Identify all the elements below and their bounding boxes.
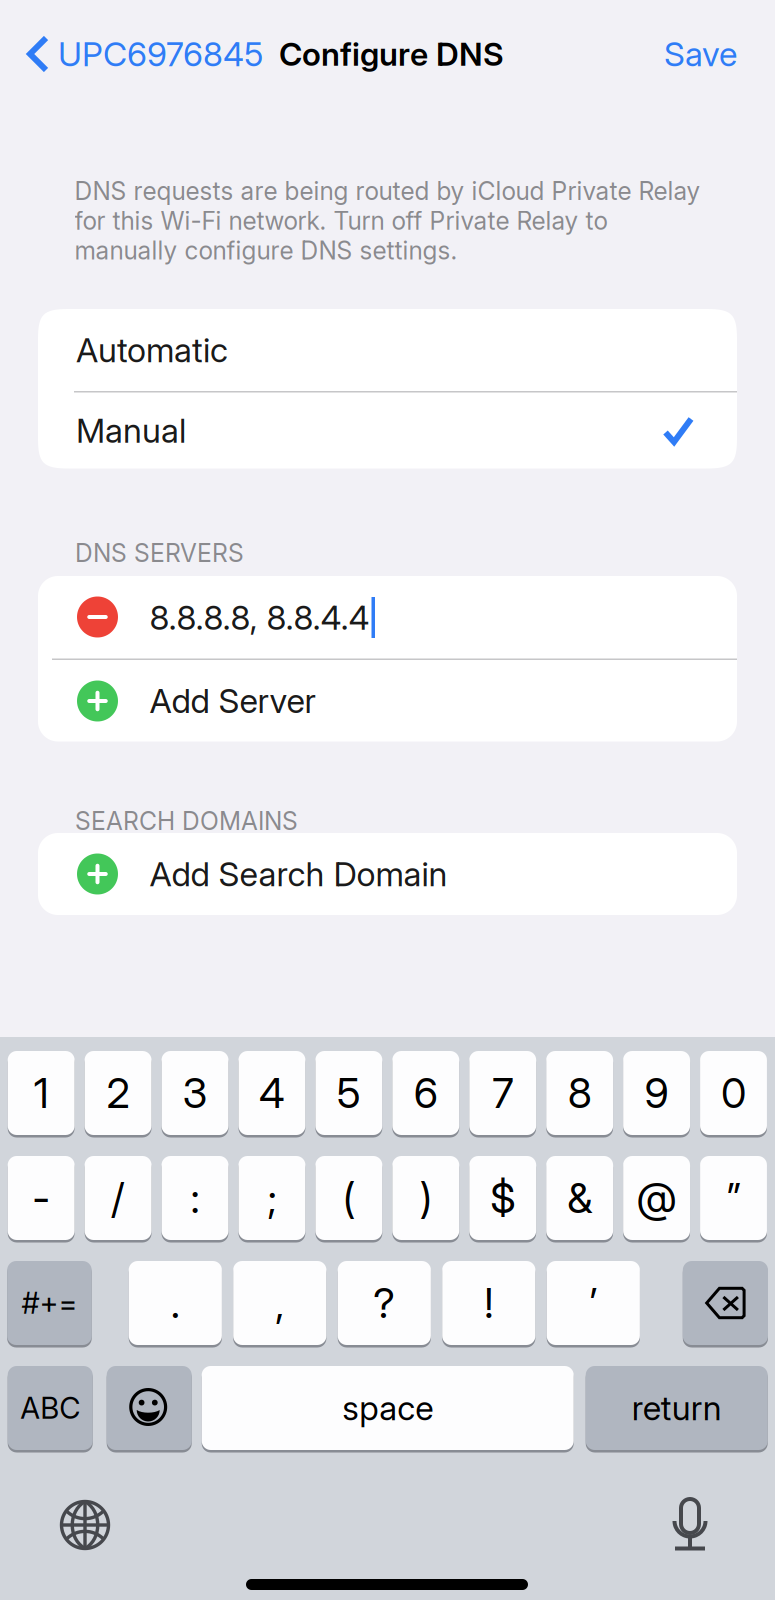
button[interactable]: ABC [8,1366,93,1453]
staticText: & [567,1173,592,1223]
staticText: ) [420,1173,432,1223]
button[interactable]: $ [469,1156,536,1243]
staticText: 3 [182,1068,207,1118]
button[interactable]: @ [623,1156,690,1243]
button[interactable]: Add Server [38,660,737,741]
button[interactable]: UPC6976845 [0,0,263,108]
button[interactable]: 5 [315,1051,382,1138]
button[interactable]: Manual [38,392,737,468]
button[interactable]: ; [238,1156,305,1243]
button[interactable]: 3 [162,1051,228,1138]
staticText: 6 [414,1068,438,1118]
staticText: Configure DNS [279,35,504,73]
staticText: - [32,1173,50,1223]
staticText: 8 [568,1068,592,1118]
button[interactable]: Dictation [673,1499,708,1552]
staticText: : [190,1173,199,1223]
button[interactable]: space [202,1366,574,1453]
button[interactable]: 4 [238,1051,305,1138]
staticText: space [342,1388,433,1428]
staticText: ’ [589,1278,597,1328]
button[interactable]: ’ [547,1261,640,1348]
staticText: Automatic [76,330,228,370]
button[interactable]: / [85,1156,151,1243]
button[interactable]: : [162,1156,228,1243]
button[interactable]: Emoji [107,1366,192,1453]
staticText: 0 [721,1068,746,1118]
staticText: / [111,1173,125,1223]
staticText: ? [373,1278,395,1328]
staticText: Manual [76,410,186,451]
staticText: ” [726,1173,740,1223]
staticText: ABC [20,1390,80,1426]
button[interactable]: ” [700,1156,767,1243]
staticText: 5 [337,1068,361,1118]
button[interactable]: 8 [546,1051,613,1138]
staticText: Add Server [149,681,315,721]
button[interactable]: Next keyboard [60,1500,110,1550]
button[interactable]: , [233,1261,326,1348]
button[interactable]: ? [338,1261,431,1348]
staticText: , [275,1278,284,1328]
staticText: . [171,1278,180,1328]
staticText: UPC6976845 [58,34,263,74]
button[interactable]: Save [664,0,775,108]
button[interactable]: 7 [469,1051,536,1138]
button[interactable]: . [129,1261,222,1348]
button[interactable]: Delete [683,1261,768,1348]
staticText: 7 [492,1068,513,1118]
button[interactable]: 0 [700,1051,767,1138]
staticText: DNS SERVERS [75,538,244,568]
staticText: Save [664,34,737,74]
staticText: ! [484,1278,493,1328]
staticText: 4 [259,1068,285,1118]
button[interactable]: Remove server [38,576,138,659]
button[interactable]: 2 [85,1051,151,1138]
staticText: DNS requests are being routed by iCloud … [74,176,700,265]
button[interactable]: #+= [7,1261,92,1348]
staticText: 1 [34,1068,49,1118]
staticText: 8.8.8.8, 8.8.4.4 [149,597,369,638]
staticText: #+= [21,1285,77,1321]
staticText: Add Search Domain [149,854,447,894]
button[interactable]: - [8,1156,75,1243]
button[interactable]: return [586,1366,768,1453]
staticText: 9 [645,1068,669,1118]
button[interactable]: 6 [392,1051,459,1138]
button[interactable]: & [546,1156,613,1243]
button[interactable]: Add Search Domain [38,833,737,915]
button[interactable]: 9 [623,1051,690,1138]
staticText: $ [490,1173,515,1223]
button[interactable]: 1 [8,1051,75,1138]
staticText: ; [267,1173,276,1223]
staticText: 2 [107,1068,130,1118]
button[interactable]: ! [442,1261,535,1348]
staticText: @ [637,1173,677,1223]
button[interactable]: Automatic [38,309,737,391]
staticText: ( [343,1173,355,1223]
button[interactable]: ) [392,1156,459,1243]
button[interactable]: ( [315,1156,382,1243]
staticText: return [632,1388,722,1428]
staticText: SEARCH DOMAINS [75,806,298,836]
